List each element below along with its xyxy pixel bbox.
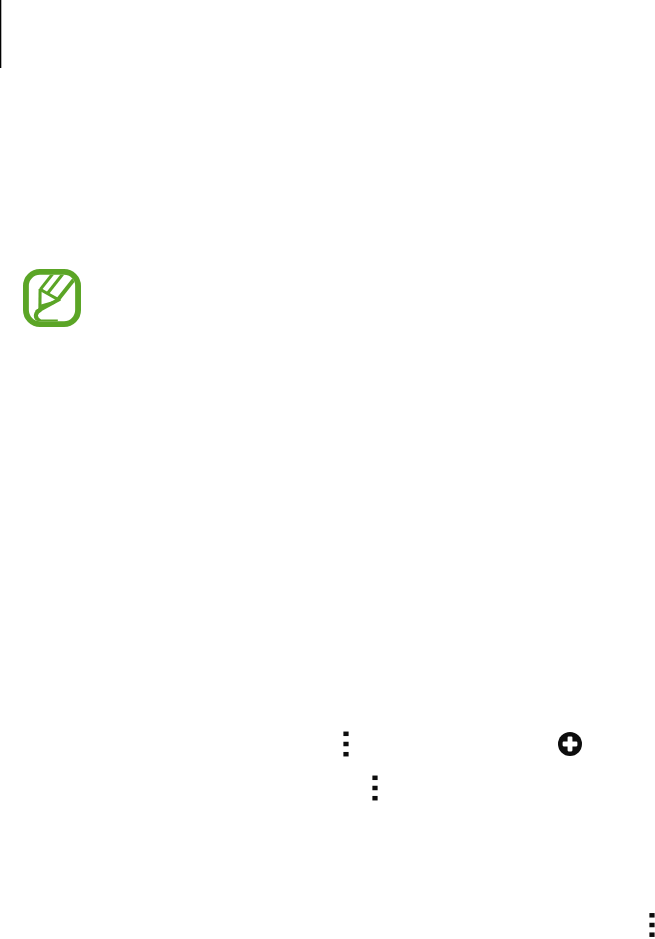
button[interactable]: More options (338, 726, 354, 762)
button[interactable]: Add (558, 732, 582, 756)
button[interactable]: Action memo (23, 269, 81, 327)
button[interactable]: More options (644, 907, 655, 939)
button[interactable]: More options (367, 770, 383, 806)
